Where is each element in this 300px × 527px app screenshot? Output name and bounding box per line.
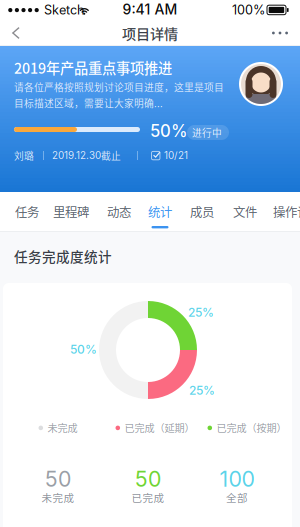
staticText: 成员 xyxy=(190,202,214,220)
button[interactable]: 动态 xyxy=(102,192,136,232)
staticText: 进行中 xyxy=(192,125,222,140)
staticText: 里程碑 xyxy=(53,202,89,220)
button[interactable]: 任务 xyxy=(10,192,44,232)
staticText: 全部 xyxy=(226,490,248,505)
staticText: 50 xyxy=(45,466,71,492)
staticText: 目标描述区域，需要让大家明确... xyxy=(14,96,163,110)
staticText: 已完成（按期） xyxy=(216,420,286,435)
staticText: 25% xyxy=(189,383,215,398)
staticText: 100 xyxy=(219,466,254,492)
staticText: 操作记录 xyxy=(273,202,300,220)
staticText: 项目详情 xyxy=(122,23,178,43)
staticText: 文件 xyxy=(233,202,257,220)
staticText: 10/21 xyxy=(164,149,188,161)
staticText: 2019.12.30 xyxy=(52,149,101,161)
staticText: 2019年产品重点事项推进 xyxy=(14,57,172,78)
staticText: 统计 xyxy=(148,202,172,220)
staticText: 已完成 xyxy=(131,490,164,505)
staticText: 50 xyxy=(135,466,161,492)
button[interactable]: 成员 xyxy=(185,192,219,232)
staticText: 已完成（延期） xyxy=(124,420,194,435)
staticText: 动态 xyxy=(107,202,131,220)
staticText: 截止 xyxy=(101,148,121,163)
staticText: 100% xyxy=(232,2,265,18)
staticText: 50% xyxy=(150,121,188,141)
button[interactable]: 文件 xyxy=(228,192,262,232)
staticText: 请各位严格按照规划讨论项目进度，这里是项目 xyxy=(14,80,224,94)
staticText: 50% xyxy=(70,342,97,357)
button[interactable]: 操作记录 xyxy=(268,192,300,232)
button[interactable]: 统计 xyxy=(143,192,177,232)
staticText: Sketch xyxy=(44,2,84,18)
staticText: 任务完成度统计 xyxy=(14,246,112,266)
staticText: 刘璐 xyxy=(14,148,34,163)
button[interactable]: Back xyxy=(0,20,32,46)
staticText: 未完成 xyxy=(41,490,74,505)
staticText: 9:41 AM xyxy=(122,1,177,18)
staticText: 未完成 xyxy=(47,420,77,435)
button[interactable]: More options xyxy=(262,20,298,46)
staticText: 25% xyxy=(188,305,214,320)
staticText: 任务 xyxy=(15,202,39,220)
button[interactable]: 里程碑 xyxy=(48,192,94,232)
